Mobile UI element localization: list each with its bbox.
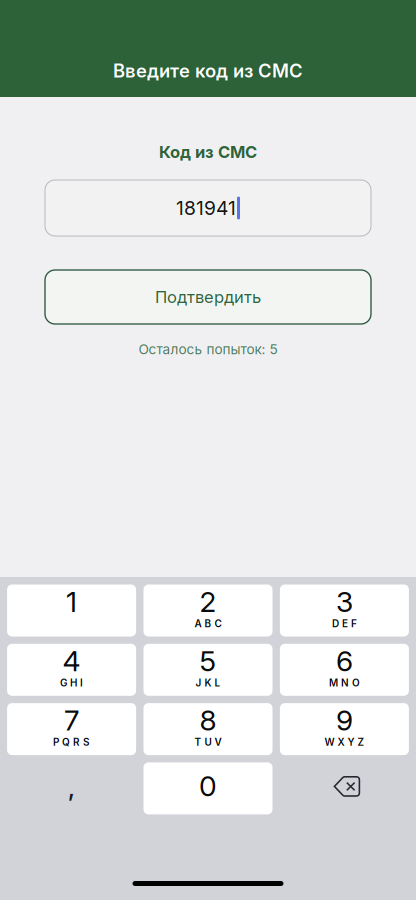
staticText: D E F bbox=[332, 617, 357, 630]
staticText: 8 bbox=[199, 703, 216, 737]
button[interactable]: Delete bbox=[280, 762, 409, 814]
button[interactable]: 1 bbox=[7, 584, 136, 636]
staticText: M N O bbox=[329, 677, 360, 689]
staticText: 4 bbox=[63, 644, 81, 678]
button[interactable]: Comma bbox=[7, 762, 136, 814]
staticText: 7 bbox=[64, 703, 79, 737]
button[interactable]: 8 bbox=[143, 703, 272, 755]
button[interactable]: 0 bbox=[143, 762, 272, 814]
staticText: G H I bbox=[60, 677, 83, 689]
staticText: W X Y Z bbox=[324, 736, 364, 748]
button[interactable]: 4 bbox=[7, 644, 136, 696]
staticText: Подтвердить bbox=[155, 287, 261, 307]
button[interactable]: 3 bbox=[280, 584, 409, 636]
staticText: P Q R S bbox=[53, 736, 90, 748]
button[interactable]: 2 bbox=[143, 584, 272, 636]
staticText: 5 bbox=[199, 644, 216, 678]
button[interactable]: 5 bbox=[143, 644, 272, 696]
staticText: 181941 bbox=[176, 196, 236, 220]
staticText: J K L bbox=[195, 677, 220, 689]
staticText: 2 bbox=[199, 584, 216, 619]
staticText: 0 bbox=[199, 769, 217, 803]
button[interactable]: Подтвердить bbox=[0, 270, 416, 324]
button[interactable]: 6 bbox=[280, 644, 409, 696]
staticText: 6 bbox=[336, 644, 353, 678]
staticText: 3 bbox=[336, 584, 353, 619]
staticText: 1 bbox=[66, 584, 77, 619]
staticText: , bbox=[68, 775, 75, 802]
button[interactable]: 9 bbox=[280, 703, 409, 755]
staticText: T U V bbox=[194, 736, 221, 748]
staticText: Осталось попыток: 5 bbox=[138, 341, 277, 357]
button[interactable]: 7 bbox=[7, 703, 136, 755]
staticText: Код из СМС bbox=[159, 142, 257, 162]
staticText: Введите код из СМС bbox=[113, 60, 303, 82]
staticText: A B C bbox=[194, 617, 221, 630]
staticText: 9 bbox=[336, 703, 353, 737]
